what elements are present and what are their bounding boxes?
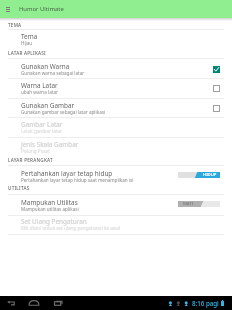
staticText: LAYAR PERANGKAT xyxy=(8,157,53,163)
button[interactable]: Mampukan Utilitas xyxy=(0,198,232,214)
button[interactable]: Menu xyxy=(0,0,15,18)
staticText: Gunakan Warna xyxy=(21,62,70,71)
button[interactable]: Gambar Latar xyxy=(0,120,232,136)
staticText: Letak gambar latar xyxy=(21,128,62,134)
staticText: Jenis Skala Gambar xyxy=(21,140,79,149)
staticText: Warna Latar xyxy=(21,81,58,90)
staticText: TEMA xyxy=(8,22,22,28)
staticText: Mampukan Utilitas xyxy=(21,198,78,207)
staticText: Gunakan warna sebagai latar xyxy=(21,70,85,76)
staticText: Pertahankan layar tetap hidup saat menam… xyxy=(21,177,134,183)
staticText: HIDUP xyxy=(203,172,217,178)
staticText: 8:16 pagi xyxy=(192,299,219,307)
staticText: Hijau xyxy=(21,40,33,46)
staticText: Tema xyxy=(21,32,38,41)
button[interactable]: Gunakan Warna xyxy=(0,62,232,78)
staticText: Potong Pusat xyxy=(21,148,50,154)
staticText: Gambar Latar xyxy=(21,120,63,129)
staticText: Humor Ultimate xyxy=(19,5,64,13)
button[interactable]: Tema xyxy=(0,32,232,48)
staticText: Mampukan utilitas aplikasi xyxy=(21,206,79,212)
button[interactable]: Back xyxy=(3,296,19,310)
button[interactable]: Set Ulang Pengaturan xyxy=(0,217,232,233)
button[interactable]: Home xyxy=(26,296,42,310)
staticText: Gunakan Gambar xyxy=(21,101,75,110)
staticText: MATI xyxy=(183,201,194,207)
button[interactable]: Pertahankan layar tetap hidup xyxy=(0,169,232,185)
staticText: UTILITAS xyxy=(8,185,30,191)
staticText: LATAR APLIKASI xyxy=(8,50,46,56)
staticText: ubah warna latar xyxy=(21,89,58,95)
button[interactable]: Jenis Skala Gambar xyxy=(0,140,232,156)
button[interactable]: Recents xyxy=(50,296,66,310)
staticText: Gunakan gambar sebagai latar aplikasi xyxy=(21,109,106,115)
button[interactable]: Warna Latar xyxy=(0,81,232,97)
staticText: Klik disini untuk set ulang pengaturan k… xyxy=(21,225,121,231)
staticText: Pertahankan layar tetap hidup xyxy=(21,169,113,178)
staticText: Set Ulang Pengaturan xyxy=(21,217,87,226)
button[interactable]: Gunakan Gambar xyxy=(0,101,232,117)
